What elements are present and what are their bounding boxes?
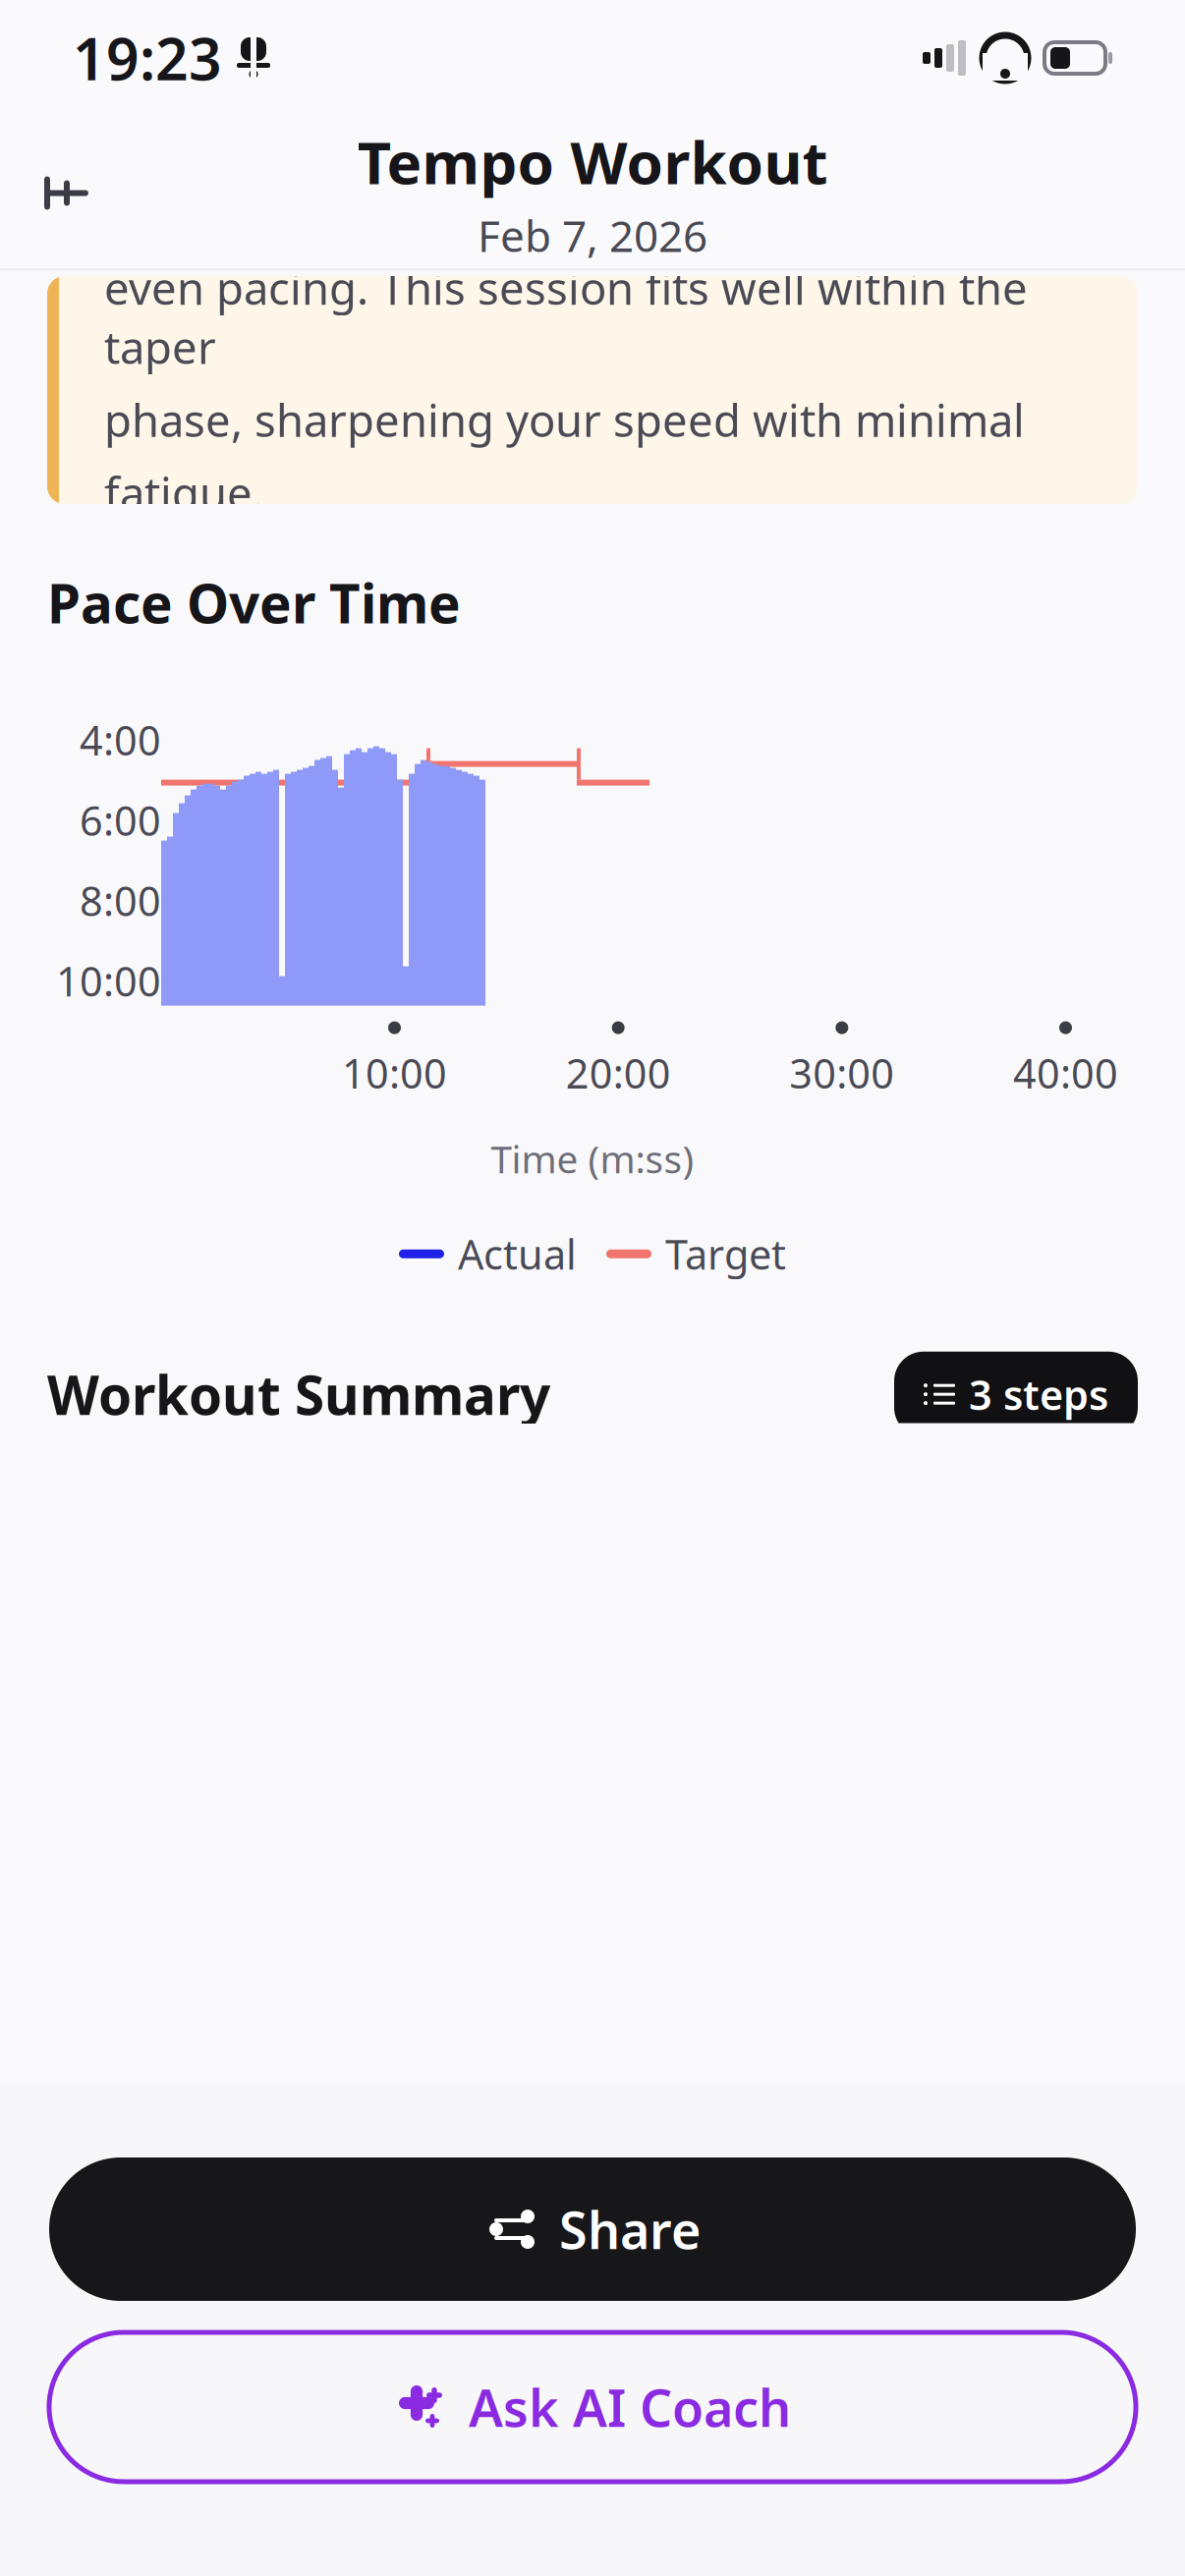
button[interactable]: Ask AI Coach xyxy=(49,2332,1136,2482)
staticText: 6:00 xyxy=(80,793,161,847)
staticText: 40:00 xyxy=(1013,1046,1118,1100)
staticText: 19:23 xyxy=(73,20,222,96)
staticText: Workout Summary xyxy=(47,1359,550,1430)
staticText: Share xyxy=(559,2195,701,2263)
staticText: Pace Over Time xyxy=(47,567,461,638)
staticText: 3 steps xyxy=(969,1367,1108,1421)
staticText: 30:00 xyxy=(789,1046,894,1100)
staticText: 4:00 xyxy=(80,713,161,767)
staticText: even pacing. This session fits well with… xyxy=(104,258,1028,376)
button[interactable]: Back xyxy=(20,146,114,240)
staticText: phase, sharpening your speed with minima… xyxy=(104,390,1025,449)
button[interactable]: 3 steps xyxy=(894,1352,1138,1437)
staticText: 10:00 xyxy=(56,954,161,1008)
staticText: fatigue. xyxy=(104,463,264,522)
staticText: Feb 7, 2026 xyxy=(478,206,707,264)
staticText: 20:00 xyxy=(566,1046,671,1100)
staticText: Tempo Workout xyxy=(357,122,828,201)
staticText: Target xyxy=(665,1227,786,1281)
button[interactable]: Share xyxy=(49,2157,1136,2301)
staticText: 10:00 xyxy=(342,1046,447,1100)
staticText: Actual xyxy=(458,1227,577,1281)
staticText: Time (m:ss) xyxy=(491,1133,694,1184)
staticText: 8:00 xyxy=(80,873,161,927)
staticText: Ask AI Coach xyxy=(469,2373,791,2441)
